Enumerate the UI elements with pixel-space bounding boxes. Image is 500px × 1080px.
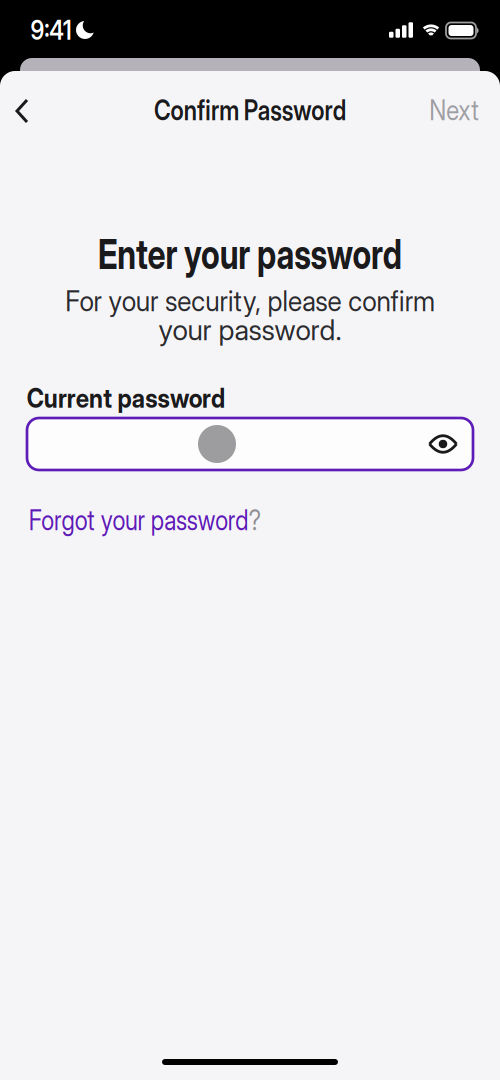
staticText: 9:41 [27,14,75,46]
staticText: Next [425,93,483,126]
button[interactable]: Next [425,93,483,126]
staticText: Enter your password [54,230,446,278]
staticText: For your security, please confirm [53,284,446,317]
staticText: Forgot your password [6,503,269,536]
staticText: Confirm Password [133,93,366,126]
staticText: Current password [14,382,237,414]
button[interactable]: Show password [425,426,461,462]
staticText: your password. [158,313,341,346]
button[interactable]: Forgot your password [6,503,284,536]
button[interactable]: Back [5,88,39,134]
button[interactable]: Current password [27,418,473,470]
